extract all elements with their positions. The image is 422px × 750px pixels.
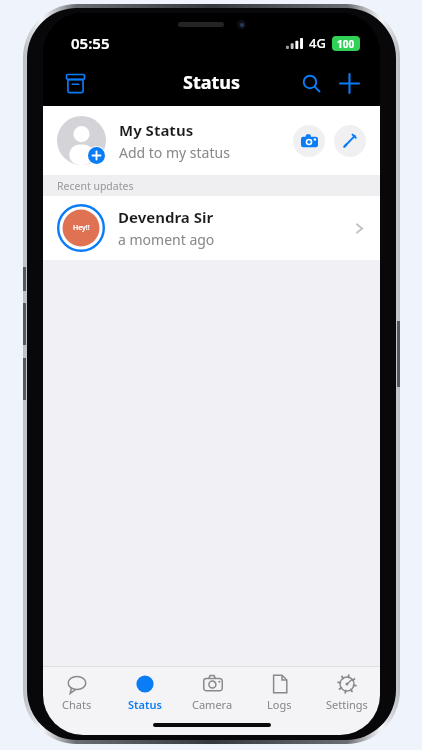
staticText: 100 xyxy=(337,37,355,51)
button[interactable]: Search xyxy=(292,64,330,102)
staticText: Logs xyxy=(267,697,292,712)
staticText: My Status xyxy=(119,120,194,140)
staticText: Hey!! xyxy=(73,223,90,233)
staticText: Recent updates xyxy=(57,179,134,193)
staticText: Status xyxy=(183,70,241,95)
staticText: Status xyxy=(128,697,162,712)
button[interactable]: Take photo status xyxy=(293,125,325,157)
staticText: a moment ago xyxy=(118,230,215,249)
button[interactable]: Archived xyxy=(57,65,93,101)
staticText: Devendra Sir xyxy=(118,207,214,227)
staticText: Chats xyxy=(62,697,92,712)
staticText: Settings xyxy=(326,697,368,712)
button[interactable]: Logs xyxy=(246,667,313,715)
staticText: 4G xyxy=(309,34,326,52)
button[interactable]: New status xyxy=(330,64,368,102)
staticText: Camera xyxy=(192,697,233,712)
button[interactable]: Write text status xyxy=(334,125,366,157)
button[interactable]: Status xyxy=(111,667,179,715)
staticText: Add to my status xyxy=(119,143,230,162)
button[interactable]: Hey!! xyxy=(43,196,380,260)
button[interactable]: Camera xyxy=(179,667,246,715)
staticText: 05:55 xyxy=(71,33,110,53)
button[interactable]: My Status xyxy=(43,106,380,175)
button[interactable]: Settings xyxy=(313,667,380,715)
button[interactable]: Chats xyxy=(43,667,111,715)
